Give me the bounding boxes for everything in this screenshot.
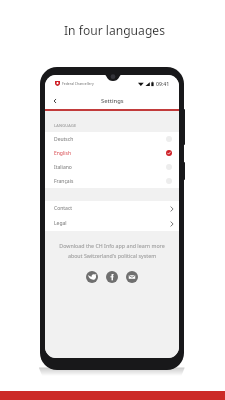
staticText: 09:41 <box>156 80 170 87</box>
button[interactable]: Back <box>45 93 64 109</box>
button[interactable]: Email <box>126 271 138 283</box>
staticText: English <box>54 150 72 157</box>
button[interactable]: Deutsch <box>45 132 179 146</box>
staticText: LANGUAGE <box>54 123 77 128</box>
staticText: Legal <box>54 220 67 227</box>
button[interactable]: Italiano <box>45 160 179 174</box>
button[interactable]: English <box>45 146 179 160</box>
staticText: Settings <box>101 97 124 105</box>
staticText: Deutsch <box>54 136 74 143</box>
staticText: Italiano <box>54 164 72 171</box>
button[interactable]: Twitter <box>86 271 98 283</box>
button[interactable]: Legal <box>45 216 179 231</box>
staticText: Federal Chancellery <box>62 81 94 86</box>
staticText: Contact <box>54 205 73 212</box>
button[interactable]: Français <box>45 174 179 188</box>
staticText: Français <box>54 178 74 185</box>
staticText: In four languages <box>64 22 165 38</box>
staticText: Download the CH Info app and learn more … <box>59 242 165 259</box>
button[interactable]: Contact <box>45 201 179 216</box>
button[interactable]: Facebook <box>106 271 118 283</box>
